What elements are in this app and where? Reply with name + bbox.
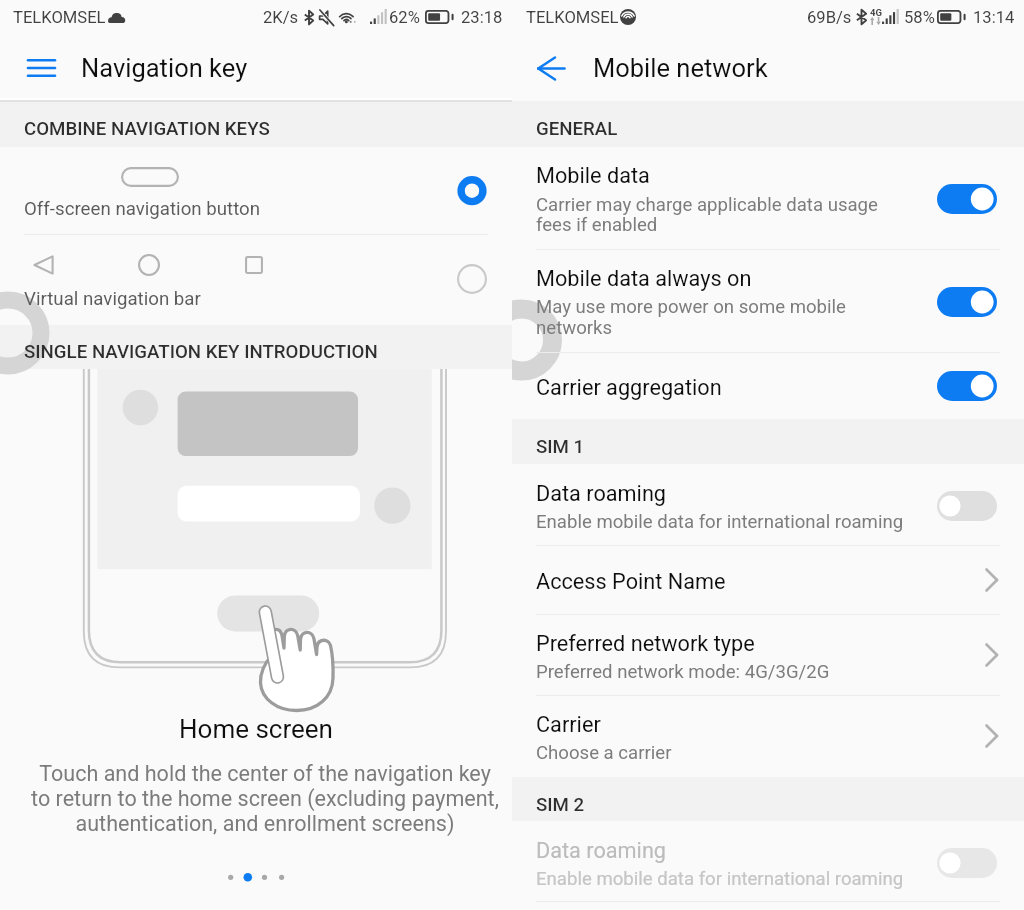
staticText: Mobile data (536, 163, 650, 188)
button[interactable] (512, 696, 1024, 777)
staticText: GENERAL (536, 118, 618, 140)
button[interactable] (0, 235, 512, 325)
staticText: 2K/s (263, 8, 299, 27)
staticText: TELKOMSEL (13, 8, 106, 27)
staticText: Enable mobile data for international roa… (536, 868, 904, 890)
button[interactable] (512, 546, 1024, 615)
staticText: Home screen (0, 714, 512, 744)
staticText: 62% (389, 8, 420, 27)
staticText: Enable mobile data for international roa… (536, 511, 904, 533)
staticText: Carrier may charge applicable data usage (536, 194, 878, 216)
staticText: Access Point Name (536, 569, 726, 594)
staticText: fees if enabled (536, 214, 658, 236)
staticText: Data roaming (536, 481, 667, 506)
staticText: Choose a carrier (536, 742, 672, 764)
staticText: 4G (870, 7, 882, 18)
button[interactable]: Open navigation menu (14, 45, 68, 91)
staticText: May use more power on some mobile (536, 296, 846, 318)
staticText: TELKOMSEL (526, 8, 619, 27)
staticText: Carrier aggregation (536, 375, 722, 400)
button[interactable] (0, 147, 512, 235)
staticText: Virtual navigation bar (24, 288, 201, 310)
staticText: Touch and hold the center of the navigat… (28, 761, 502, 836)
button[interactable] (512, 615, 1024, 696)
staticText: Data roaming (536, 838, 667, 863)
staticText: 13:14 (973, 8, 1015, 27)
staticText: SIM 1 (536, 436, 585, 458)
staticText: 23:18 (461, 8, 503, 27)
staticText: SIM 2 (536, 794, 585, 816)
button[interactable] (512, 464, 1024, 546)
button[interactable]: Back (526, 45, 578, 91)
staticText: COMBINE NAVIGATION KEYS (24, 118, 270, 140)
staticText: Preferred network type (536, 631, 755, 656)
staticText: 69B/s (807, 8, 852, 27)
staticText: networks (536, 317, 613, 339)
button[interactable] (512, 250, 1024, 353)
staticText: Mobile network (593, 53, 768, 83)
button[interactable] (512, 821, 1024, 902)
button[interactable] (512, 147, 1024, 250)
staticText: Off-screen navigation button (24, 198, 261, 220)
staticText: Preferred network mode: 4G/3G/2G (536, 661, 830, 683)
button[interactable] (512, 353, 1024, 419)
staticText: Carrier (536, 712, 601, 737)
staticText: SINGLE NAVIGATION KEY INTRODUCTION (24, 341, 378, 363)
staticText: Navigation key (81, 53, 248, 83)
staticText: Mobile data always on (536, 266, 752, 291)
staticText: 58% (904, 8, 935, 27)
